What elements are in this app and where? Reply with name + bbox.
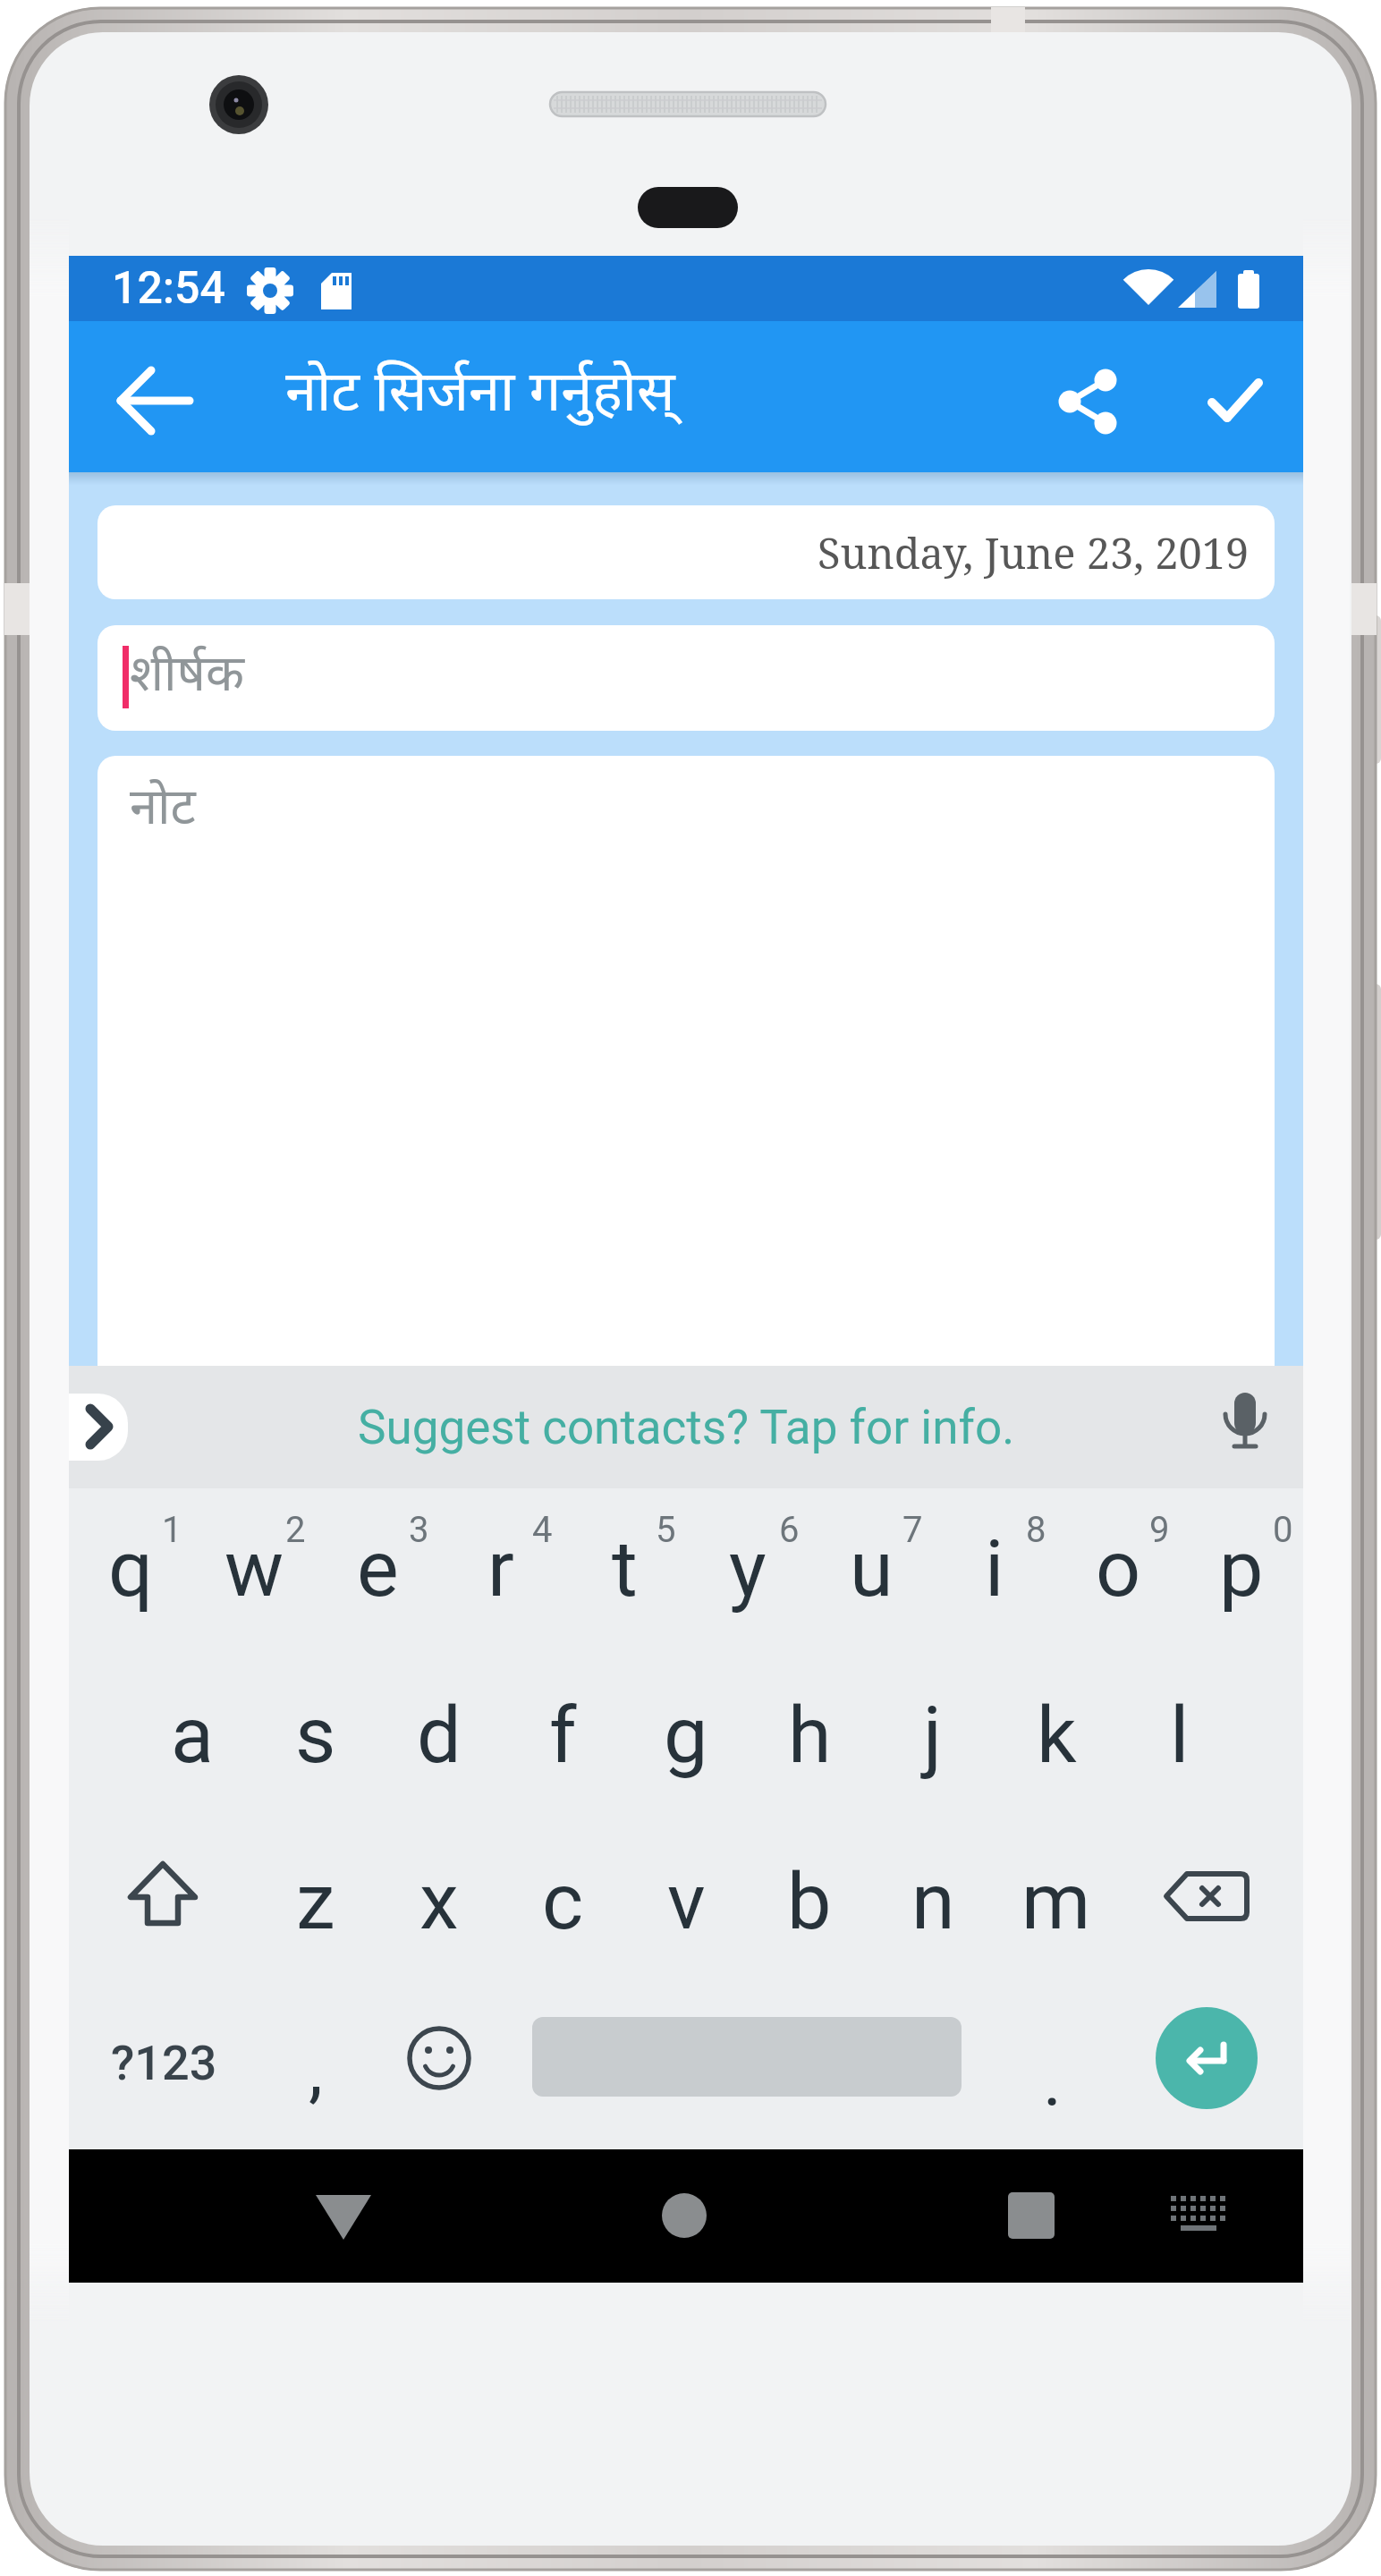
button[interactable]: i (933, 1488, 1056, 1648)
staticText: h (788, 1689, 832, 1781)
button[interactable]: d (377, 1655, 501, 1814)
button[interactable]: m (995, 1821, 1118, 1980)
staticText: 7 (902, 1509, 923, 1551)
button[interactable] (1105, 348, 1210, 453)
button[interactable]: s (254, 1655, 377, 1814)
staticText: k (1037, 1689, 1077, 1781)
button[interactable]: v (624, 1821, 748, 1980)
staticText: 12:54 (112, 262, 225, 315)
button[interactable]: l (1118, 1655, 1241, 1814)
staticText: 8 (1026, 1509, 1046, 1551)
button[interactable] (1214, 1394, 1278, 1461)
button[interactable] (973, 2157, 1089, 2274)
staticText: r (487, 1522, 514, 1614)
button[interactable] (287, 2157, 403, 2274)
staticText: m (1021, 1855, 1091, 1947)
staticText: Suggest contacts? Tap for info. (358, 1400, 1015, 1455)
staticText: 1 (162, 1509, 182, 1551)
button[interactable]: शीर्षक (97, 625, 1275, 731)
staticText: d (417, 1689, 462, 1781)
button[interactable]: g (624, 1655, 748, 1814)
staticText: शीर्षक (130, 646, 244, 711)
button[interactable] (626, 2157, 742, 2274)
staticText: z (296, 1855, 335, 1947)
staticText: i (985, 1522, 1004, 1614)
button[interactable]: j (871, 1655, 995, 1814)
staticText: 4 (532, 1509, 553, 1551)
staticText: g (664, 1689, 708, 1781)
button[interactable] (1174, 348, 1280, 453)
staticText: नोट सिर्जना गर्नुहोस् (285, 360, 675, 434)
button[interactable]: k (995, 1655, 1118, 1814)
staticText: , (309, 2029, 323, 2113)
button[interactable]: a (131, 1655, 254, 1814)
staticText: n (911, 1855, 955, 1947)
staticText: y (729, 1522, 767, 1614)
staticText: b (787, 1855, 832, 1947)
staticText: j (923, 1689, 943, 1781)
staticText: s (295, 1689, 336, 1781)
staticText: 3 (409, 1509, 429, 1551)
staticText: a (171, 1689, 214, 1781)
staticText: w (225, 1522, 284, 1614)
staticText: x (419, 1855, 459, 1947)
button[interactable]: f (501, 1655, 624, 1814)
button[interactable]: Sunday, June 23, 2019 (97, 505, 1275, 599)
button[interactable]: r (439, 1488, 563, 1648)
button[interactable] (69, 1394, 128, 1461)
button[interactable]: नोट (97, 756, 1275, 1366)
staticText: 9 (1149, 1509, 1170, 1551)
button[interactable]: c (501, 1821, 624, 1980)
staticText: नोट (130, 779, 196, 844)
staticText: Sunday, June 23, 2019 (818, 524, 1250, 581)
staticText: c (542, 1855, 584, 1947)
button[interactable]: n (871, 1821, 995, 1980)
button[interactable] (1140, 1821, 1274, 1980)
button[interactable]: ?123 (97, 1987, 231, 2138)
button[interactable]: w (192, 1488, 316, 1648)
staticText: t (612, 1522, 638, 1614)
staticText: q (108, 1522, 154, 1614)
button[interactable]: h (748, 1655, 871, 1814)
button[interactable]: . (991, 2002, 1114, 2161)
button[interactable] (167, 348, 273, 453)
button[interactable] (1140, 2157, 1257, 2274)
staticText: l (1170, 1689, 1190, 1781)
button[interactable]: o (1056, 1488, 1180, 1648)
button[interactable]: x (377, 1821, 501, 1980)
button[interactable]: y (686, 1488, 809, 1648)
button[interactable]: z (254, 1821, 377, 1980)
button[interactable] (377, 1979, 501, 2138)
staticText: 5 (656, 1509, 676, 1551)
staticText: 0 (1273, 1509, 1293, 1551)
staticText: p (1219, 1522, 1264, 1614)
button[interactable]: , (254, 1991, 377, 2150)
button[interactable] (96, 1821, 230, 1980)
staticText: ?123 (111, 2035, 217, 2091)
button[interactable]: e (316, 1488, 439, 1648)
staticText: e (357, 1522, 399, 1614)
staticText: v (667, 1855, 706, 1947)
button[interactable]: u (809, 1488, 933, 1648)
staticText: 2 (285, 1509, 306, 1551)
button[interactable]: b (748, 1821, 871, 1980)
staticText: o (1096, 1522, 1141, 1614)
button[interactable]: q (69, 1488, 192, 1648)
button[interactable]: p (1180, 1488, 1303, 1648)
button[interactable] (1156, 2007, 1258, 2109)
staticText: 6 (779, 1509, 800, 1551)
staticText: . (1043, 2039, 1063, 2123)
staticText: f (549, 1689, 577, 1781)
button[interactable]: t (563, 1488, 686, 1648)
staticText: u (850, 1522, 894, 1614)
